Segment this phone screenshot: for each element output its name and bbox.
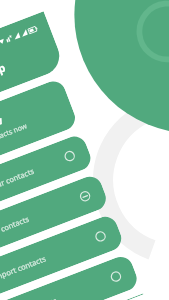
button[interactable]: Export contacts: [0, 173, 110, 260]
staticText: Restore your contacts: [0, 157, 59, 203]
button[interactable]: Share contacts: [0, 253, 140, 300]
button[interactable]: Settings: [0, 293, 144, 300]
staticText: Auto Backup: [0, 59, 7, 98]
button[interactable]: Restore your contacts: [0, 133, 94, 220]
staticText: Share contacts: [6, 277, 105, 300]
button[interactable]: Import contacts: [0, 213, 125, 300]
staticText: Backup your contacts now: [0, 121, 29, 161]
staticText: Backup Now: [0, 113, 5, 149]
staticText: Import contacts: [0, 237, 90, 283]
button[interactable]: Backup Now: [0, 78, 79, 180]
staticText: Export contacts: [0, 197, 74, 243]
